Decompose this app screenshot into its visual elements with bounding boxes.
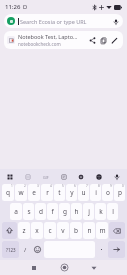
staticText: u bbox=[81, 188, 86, 197]
staticText: r bbox=[46, 188, 49, 197]
staticText: 9 bbox=[110, 184, 112, 188]
button[interactable]: c bbox=[44, 222, 56, 239]
staticText: 1 bbox=[11, 184, 13, 188]
button[interactable]: q bbox=[2, 184, 14, 201]
button[interactable]: i bbox=[90, 184, 101, 201]
button[interactable]: Edit bbox=[109, 35, 120, 46]
staticText: e bbox=[32, 188, 36, 197]
staticText: 0 bbox=[122, 184, 124, 188]
button[interactable]: w bbox=[15, 184, 27, 201]
staticText: 4 bbox=[50, 184, 52, 188]
staticText: y bbox=[70, 188, 74, 197]
button[interactable]: Enter bbox=[108, 241, 125, 258]
staticText: Notebook Test, Lapto… bbox=[18, 33, 78, 40]
button[interactable]: Clipboard bbox=[22, 171, 34, 183]
button[interactable]: Period bbox=[96, 241, 107, 258]
staticText: o bbox=[106, 188, 110, 197]
staticText: l bbox=[112, 207, 114, 216]
staticText: Search Ecosia or type URL bbox=[20, 18, 109, 25]
button[interactable]: l bbox=[107, 203, 118, 220]
staticText: p bbox=[118, 188, 122, 197]
staticText: ?123 bbox=[6, 247, 16, 253]
button[interactable]: n bbox=[83, 222, 95, 239]
button[interactable]: p bbox=[114, 184, 125, 201]
button[interactable]: v bbox=[57, 222, 69, 239]
button[interactable]: h bbox=[71, 203, 82, 220]
staticText: m bbox=[99, 226, 106, 235]
button[interactable]: j bbox=[83, 203, 94, 220]
button[interactable]: y bbox=[66, 184, 77, 201]
staticText: a bbox=[14, 207, 18, 216]
button[interactable]: b bbox=[70, 222, 82, 239]
staticText: s bbox=[27, 207, 31, 216]
button[interactable]: z bbox=[18, 222, 30, 239]
staticText: x bbox=[35, 226, 39, 235]
staticText: 7 bbox=[86, 184, 88, 188]
staticText: h bbox=[74, 207, 79, 216]
button[interactable]: Shift bbox=[2, 222, 17, 239]
staticText: 3 bbox=[37, 184, 39, 188]
button[interactable]: x bbox=[31, 222, 43, 239]
staticText: 6 bbox=[74, 184, 76, 188]
button[interactable]: Settings bbox=[75, 171, 87, 183]
button[interactable]: m bbox=[96, 222, 108, 239]
staticText: 2 bbox=[24, 184, 26, 188]
button[interactable]: Symbols bbox=[2, 241, 19, 258]
button[interactable]: k bbox=[95, 203, 106, 220]
button[interactable]: Share bbox=[87, 35, 98, 46]
staticText: g bbox=[63, 207, 67, 216]
button[interactable]: e bbox=[28, 184, 40, 201]
button[interactable]: Slash bbox=[20, 241, 31, 258]
button[interactable]: a bbox=[10, 203, 22, 220]
staticText: t bbox=[58, 188, 61, 197]
staticText: e bbox=[10, 18, 13, 25]
button[interactable]: Translate bbox=[58, 171, 70, 183]
button[interactable]: g bbox=[59, 203, 70, 220]
button[interactable]: r bbox=[41, 184, 53, 201]
button[interactable]: t bbox=[54, 184, 65, 201]
staticText: k bbox=[99, 207, 103, 216]
staticText: notebookcheck.com bbox=[18, 41, 61, 47]
button[interactable]: Theme bbox=[93, 171, 105, 183]
button[interactable]: GIF bbox=[40, 171, 52, 183]
staticText: n bbox=[87, 226, 92, 235]
button[interactable]: Notebook Test, Lapto… bbox=[4, 31, 123, 49]
button[interactable]: Back bbox=[84, 260, 104, 275]
button[interactable]: Open in new tab bbox=[98, 35, 109, 46]
staticText: v bbox=[61, 226, 65, 235]
staticText: j bbox=[88, 207, 90, 216]
button[interactable]: d bbox=[35, 203, 46, 220]
staticText: z bbox=[22, 226, 26, 235]
button[interactable]: o bbox=[102, 184, 113, 201]
staticText: 5 bbox=[62, 184, 64, 188]
button[interactable]: Apps bbox=[4, 171, 16, 183]
staticText: 11:26 bbox=[5, 3, 21, 11]
button[interactable]: Emoji bbox=[32, 241, 43, 258]
staticText: GIF bbox=[43, 175, 49, 180]
staticText: i bbox=[95, 188, 97, 197]
button[interactable]: f bbox=[47, 203, 58, 220]
button[interactable]: Home bbox=[54, 260, 74, 275]
staticText: q bbox=[6, 188, 10, 197]
staticText: b bbox=[74, 226, 78, 235]
staticText: / bbox=[24, 246, 27, 254]
button[interactable]: Backspace bbox=[109, 222, 125, 239]
staticText: d bbox=[39, 207, 43, 216]
staticText: 8 bbox=[98, 184, 100, 188]
button[interactable]: Recent apps bbox=[24, 260, 44, 275]
staticText: w bbox=[18, 188, 24, 197]
button[interactable]: Voice search bbox=[111, 17, 120, 26]
button[interactable]: Voice input bbox=[111, 171, 123, 183]
button[interactable]: e bbox=[4, 14, 123, 28]
button[interactable]: u bbox=[78, 184, 89, 201]
button[interactable]: s bbox=[23, 203, 34, 220]
staticText: f bbox=[51, 207, 54, 216]
staticText: c bbox=[48, 226, 52, 235]
